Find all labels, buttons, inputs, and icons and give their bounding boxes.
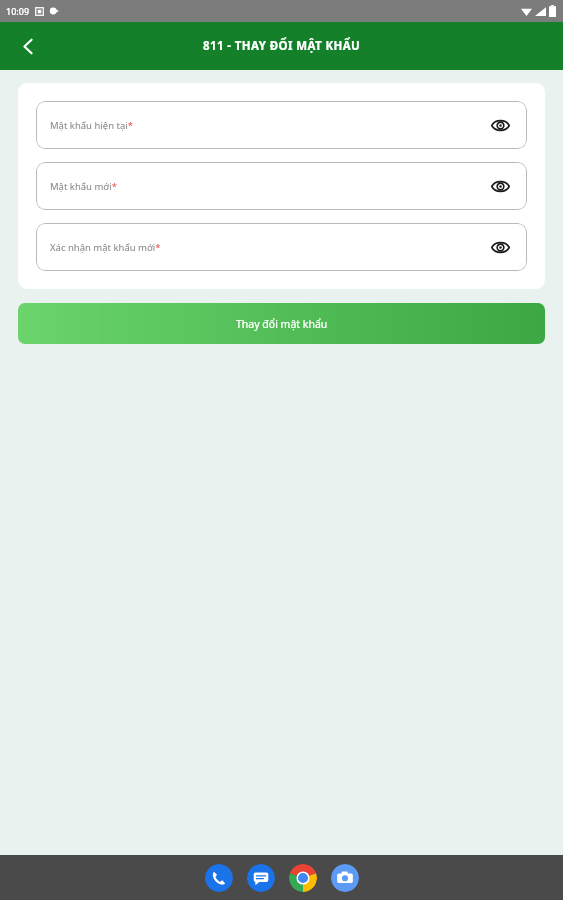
button[interactable]: Back — [8, 26, 48, 66]
button[interactable]: Xác nhận mật khẩu mới* — [36, 223, 527, 271]
button[interactable]: Camera — [331, 864, 359, 892]
button[interactable]: Show password — [485, 171, 515, 201]
button[interactable]: Chrome — [289, 864, 317, 892]
button[interactable]: Phone — [205, 864, 233, 892]
button[interactable]: Messages — [247, 864, 275, 892]
button[interactable]: Mật khẩu mới* — [36, 162, 527, 210]
staticText: Thay đổi mật khẩu — [236, 317, 328, 331]
staticText: 10:09 — [6, 5, 30, 17]
button[interactable]: Show password — [485, 110, 515, 140]
staticText: Mật khẩu hiện tại* — [50, 119, 485, 132]
staticText: 811 - THAY ĐỔI MẬT KHẨU — [203, 38, 361, 54]
staticText: Xác nhận mật khẩu mới* — [50, 241, 485, 254]
button[interactable]: Thay đổi mật khẩu — [18, 303, 545, 344]
button[interactable]: Show password — [485, 232, 515, 262]
staticText: Mật khẩu mới* — [50, 180, 485, 193]
button[interactable]: Mật khẩu hiện tại* — [36, 101, 527, 149]
